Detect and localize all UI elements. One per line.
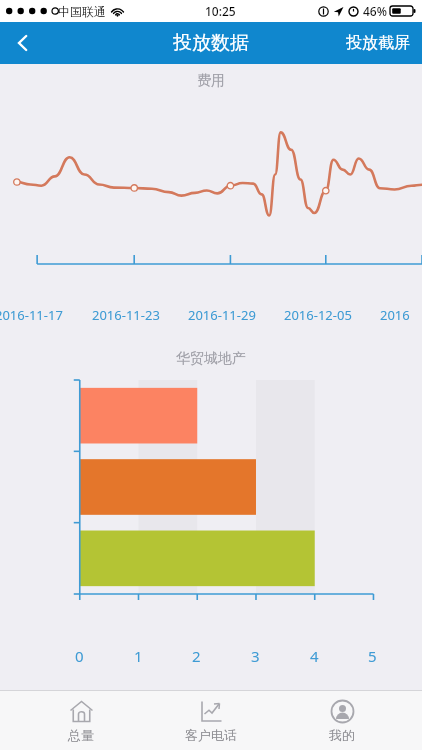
staticText: 客户电话 (185, 727, 237, 743)
button[interactable]: 投放截屏 (334, 25, 422, 61)
staticText: 46% (363, 3, 387, 19)
staticText: 5 (368, 646, 377, 666)
staticText: 投放截屏 (346, 33, 410, 53)
staticText: 2016-11-17 (0, 306, 63, 324)
staticText: 0 (75, 646, 84, 666)
staticText: 华贸城地产 (0, 350, 422, 368)
staticText: 我的 (329, 727, 355, 743)
staticText: 4 (310, 646, 319, 666)
staticText: 中国联通 (58, 4, 106, 19)
button[interactable]: 我的 (292, 694, 392, 748)
button[interactable]: 客户电话 (161, 694, 261, 748)
button[interactable]: 总量 (31, 694, 131, 748)
staticText: 1 (134, 646, 143, 666)
staticText: 2 (192, 646, 201, 666)
staticText: 投放数据 (173, 31, 249, 55)
staticText: 3 (251, 646, 260, 666)
staticText: 费用 (0, 72, 422, 90)
staticText: 2016-11-29 (188, 306, 256, 324)
button[interactable]: Back (0, 22, 46, 64)
staticText: 10:25 (205, 3, 236, 19)
staticText: 2016-12-05 (284, 306, 352, 324)
staticText: 总量 (68, 727, 94, 743)
staticText: 2016 (380, 306, 410, 324)
staticText: 2016-11-23 (92, 306, 160, 324)
